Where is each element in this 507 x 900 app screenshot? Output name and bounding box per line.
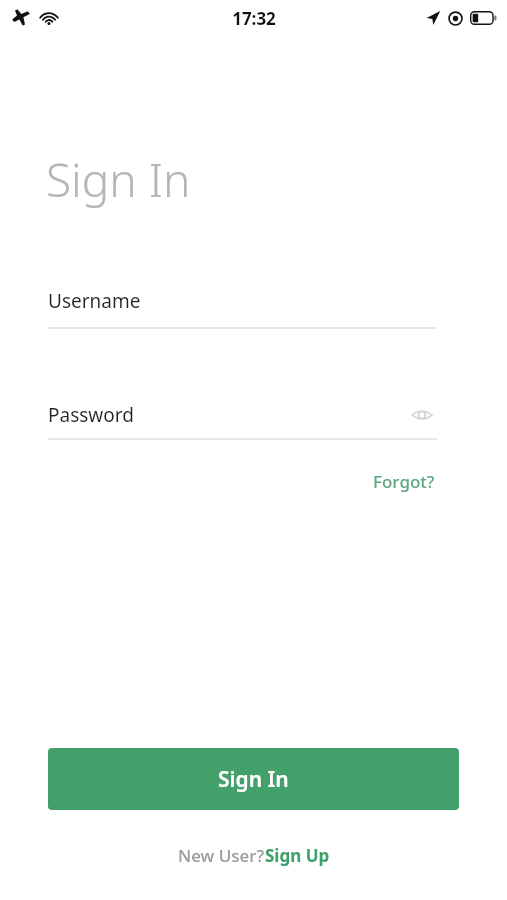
- staticText: 17:32: [232, 7, 276, 30]
- button[interactable]: New User?: [178, 844, 265, 867]
- button[interactable]: Username: [48, 288, 437, 329]
- button[interactable]: Forgot?: [371, 466, 437, 497]
- staticText: Forgot?: [373, 470, 435, 493]
- staticText: Sign In: [46, 148, 191, 211]
- button[interactable]: Sign Up: [265, 840, 330, 871]
- staticText: Username: [48, 288, 141, 314]
- button[interactable]: Show password: [407, 400, 437, 430]
- button[interactable]: Password: [48, 400, 437, 430]
- staticText: Password: [48, 402, 134, 428]
- button[interactable]: Sign In: [48, 748, 459, 810]
- staticText: Sign In: [218, 765, 289, 794]
